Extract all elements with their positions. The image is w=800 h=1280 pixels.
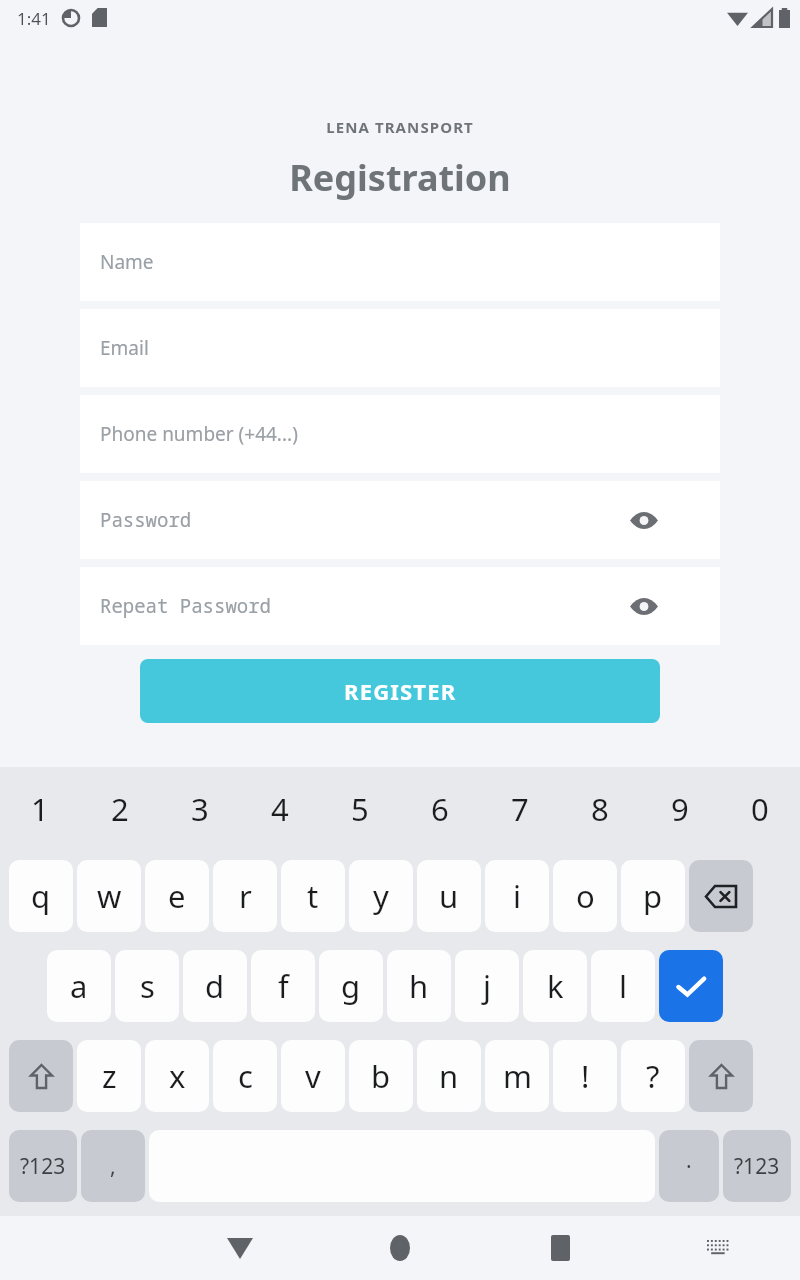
- button[interactable]: Shift: [9, 1040, 73, 1112]
- button[interactable]: b: [349, 1040, 413, 1112]
- staticText: r: [239, 875, 252, 917]
- button[interactable]: n: [417, 1040, 481, 1112]
- staticText: b: [371, 1055, 391, 1097]
- button[interactable]: v: [281, 1040, 345, 1112]
- button[interactable]: w: [77, 860, 141, 932]
- staticText: 3: [191, 788, 209, 830]
- button[interactable]: 9: [640, 776, 720, 842]
- button[interactable]: e: [145, 860, 209, 932]
- staticText: 1: [31, 788, 49, 830]
- staticText: Registration: [289, 153, 511, 202]
- button[interactable]: Email: [80, 309, 720, 387]
- staticText: f: [278, 965, 289, 1007]
- button[interactable]: 7: [480, 776, 560, 842]
- button[interactable]: !: [553, 1040, 617, 1112]
- staticText: 8: [591, 788, 609, 830]
- button[interactable]: a: [47, 950, 111, 1022]
- button[interactable]: 2: [80, 776, 160, 842]
- button[interactable]: o: [553, 860, 617, 932]
- button[interactable]: Phone number (+44...): [80, 395, 720, 473]
- staticText: 7: [511, 788, 529, 830]
- button[interactable]: ,: [81, 1130, 145, 1202]
- button[interactable]: u: [417, 860, 481, 932]
- staticText: i: [513, 875, 521, 917]
- staticText: a: [70, 965, 88, 1007]
- button[interactable]: Recents: [480, 1216, 640, 1280]
- button[interactable]: d: [183, 950, 247, 1022]
- button[interactable]: y: [349, 860, 413, 932]
- staticText: 2: [111, 788, 129, 830]
- staticText: ?123: [734, 1152, 780, 1181]
- button[interactable]: 8: [560, 776, 640, 842]
- staticText: Repeat Password: [100, 593, 272, 619]
- button[interactable]: k: [523, 950, 587, 1022]
- button[interactable]: Password: [80, 481, 720, 559]
- staticText: Email: [100, 335, 149, 361]
- staticText: y: [373, 875, 389, 917]
- button[interactable]: Enter: [659, 950, 723, 1022]
- button[interactable]: Name: [80, 223, 720, 301]
- staticText: c: [238, 1055, 253, 1097]
- button[interactable]: Home: [320, 1216, 480, 1280]
- staticText: ,: [110, 1152, 116, 1181]
- button[interactable]: Shift: [689, 1040, 753, 1112]
- button[interactable]: l: [591, 950, 655, 1022]
- button[interactable]: 5: [320, 776, 400, 842]
- button[interactable]: ?: [621, 1040, 685, 1112]
- button[interactable]: 3: [160, 776, 240, 842]
- staticText: 5: [351, 788, 369, 830]
- button[interactable]: h: [387, 950, 451, 1022]
- button[interactable]: 1: [0, 776, 80, 842]
- button[interactable]: s: [115, 950, 179, 1022]
- button[interactable]: 6: [400, 776, 480, 842]
- staticText: REGISTER: [344, 676, 457, 706]
- button[interactable]: t: [281, 860, 345, 932]
- staticText: t: [307, 875, 319, 917]
- staticText: !: [581, 1055, 590, 1097]
- button[interactable]: g: [319, 950, 383, 1022]
- staticText: 4: [271, 788, 289, 830]
- staticText: k: [547, 965, 564, 1007]
- staticText: u: [439, 875, 459, 917]
- staticText: g: [341, 965, 361, 1007]
- button[interactable]: 4: [240, 776, 320, 842]
- button[interactable]: Hide keyboard: [640, 1216, 800, 1280]
- button[interactable]: z: [77, 1040, 141, 1112]
- staticText: ·: [686, 1152, 692, 1181]
- button[interactable]: ·: [659, 1130, 719, 1202]
- staticText: Name: [100, 249, 154, 275]
- button[interactable]: x: [145, 1040, 209, 1112]
- button[interactable]: m: [485, 1040, 549, 1112]
- button[interactable]: r: [213, 860, 277, 932]
- button[interactable]: ?123: [723, 1130, 791, 1202]
- staticText: ?: [646, 1055, 660, 1097]
- button[interactable]: 0: [720, 776, 800, 842]
- staticText: h: [409, 965, 429, 1007]
- button[interactable]: Back: [160, 1216, 320, 1280]
- button[interactable]: c: [213, 1040, 277, 1112]
- button[interactable]: p: [621, 860, 685, 932]
- button[interactable]: f: [251, 950, 315, 1022]
- staticText: j: [483, 965, 491, 1007]
- staticText: 0: [751, 788, 769, 830]
- staticText: ?123: [20, 1152, 66, 1181]
- button[interactable]: Show password: [620, 582, 668, 630]
- button[interactable]: i: [485, 860, 549, 932]
- button[interactable]: ?123: [9, 1130, 77, 1202]
- button[interactable]: Show password: [620, 496, 668, 544]
- staticText: e: [168, 875, 186, 917]
- staticText: p: [643, 875, 663, 917]
- staticText: 6: [431, 788, 449, 830]
- button[interactable]: q: [9, 860, 73, 932]
- staticText: Password: [100, 507, 192, 533]
- button[interactable]: REGISTER: [140, 659, 660, 723]
- staticText: v: [305, 1055, 321, 1097]
- button[interactable]: j: [455, 950, 519, 1022]
- staticText: x: [169, 1055, 186, 1097]
- button[interactable]: Backspace: [689, 860, 753, 932]
- button[interactable]: Repeat Password: [80, 567, 720, 645]
- staticText: n: [439, 1055, 459, 1097]
- staticText: z: [102, 1055, 117, 1097]
- staticText: w: [97, 875, 122, 917]
